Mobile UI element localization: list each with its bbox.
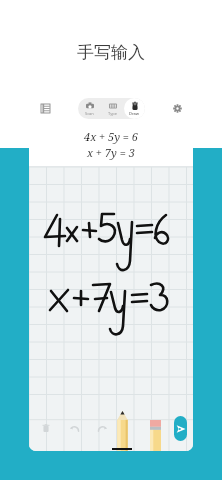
staticText: 手写输入 [77,42,145,63]
button[interactable]: Scan [78,98,101,119]
button[interactable]: Draw [123,98,145,119]
button[interactable]: Send [174,416,187,441]
staticText: 4x + 5y = 6 [84,129,138,144]
button[interactable]: Settings [167,98,187,118]
button[interactable]: Delete [36,418,56,438]
button[interactable]: Redo [92,418,112,438]
button[interactable]: Type [101,98,123,119]
button[interactable]: Pencil [112,405,132,451]
staticText: Draw [129,111,140,116]
staticText: Scan [85,111,94,116]
staticText: x + 7y = 3 [87,145,135,160]
button[interactable]: Menu [35,98,55,118]
button[interactable]: Eraser [146,405,164,451]
button[interactable]: Undo [64,418,84,438]
staticText: Type [108,111,117,116]
